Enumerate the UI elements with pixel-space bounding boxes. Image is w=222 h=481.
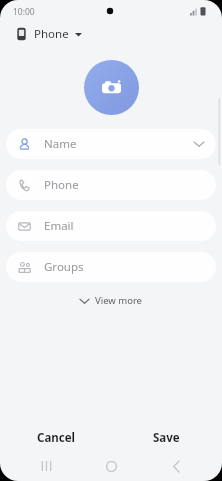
button[interactable]: Recents <box>27 455 65 477</box>
button[interactable]: Save <box>111 425 222 451</box>
button[interactable]: Add contact photo <box>84 60 139 115</box>
button[interactable]: Phone <box>14 24 84 44</box>
button[interactable]: Name <box>6 129 216 159</box>
button[interactable]: Phone <box>6 170 216 200</box>
button[interactable]: View more <box>74 291 148 310</box>
staticText: Email <box>44 218 74 234</box>
button[interactable]: Email <box>6 211 216 241</box>
staticText: View more <box>95 294 142 307</box>
staticText: Cancel <box>37 430 75 446</box>
staticText: Phone <box>34 26 69 42</box>
staticText: Name <box>44 136 77 152</box>
staticText: Save <box>153 430 180 446</box>
button[interactable]: Groups <box>6 252 216 282</box>
button[interactable]: Home <box>92 455 130 477</box>
button[interactable]: Cancel <box>0 425 111 451</box>
button[interactable]: Back <box>157 455 195 477</box>
staticText: Groups <box>44 259 84 275</box>
staticText: Phone <box>44 177 79 193</box>
staticText: 10:00 <box>13 6 35 18</box>
